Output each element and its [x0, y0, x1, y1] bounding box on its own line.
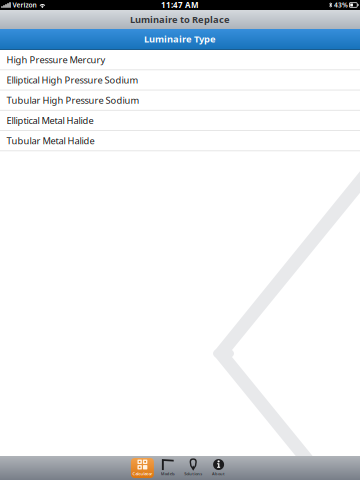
button[interactable]: Solutions: [180, 458, 206, 478]
staticText: Luminaire Type: [144, 33, 216, 45]
button[interactable]: Tubular High Pressure Sodium: [0, 90, 360, 111]
staticText: About: [212, 471, 225, 476]
staticText: High Pressure Mercury: [6, 53, 105, 66]
button[interactable]: Models: [155, 458, 180, 478]
staticText: Elliptical Metal Halide: [6, 114, 93, 127]
button[interactable]: Elliptical Metal Halide: [0, 111, 360, 131]
staticText: Solutions: [184, 471, 202, 476]
staticText: Verizon: [12, 1, 36, 9]
button[interactable]: Elliptical High Pressure Sodium: [0, 70, 360, 90]
staticText: 11:47 AM: [161, 0, 199, 10]
button[interactable]: Tubular Metal Halide: [0, 131, 360, 151]
staticText: Models: [161, 471, 175, 476]
button[interactable]: High Pressure Mercury: [0, 50, 360, 70]
staticText: 43%: [334, 1, 348, 9]
button[interactable]: Calculator: [130, 458, 155, 478]
button[interactable]: About: [206, 458, 231, 478]
staticText: Tubular High Pressure Sodium: [6, 94, 139, 106]
staticText: Calculator: [132, 471, 152, 476]
staticText: Elliptical High Pressure Sodium: [6, 74, 138, 86]
staticText: Luminaire to Replace: [130, 13, 230, 26]
staticText: Tubular Metal Halide: [6, 134, 94, 147]
